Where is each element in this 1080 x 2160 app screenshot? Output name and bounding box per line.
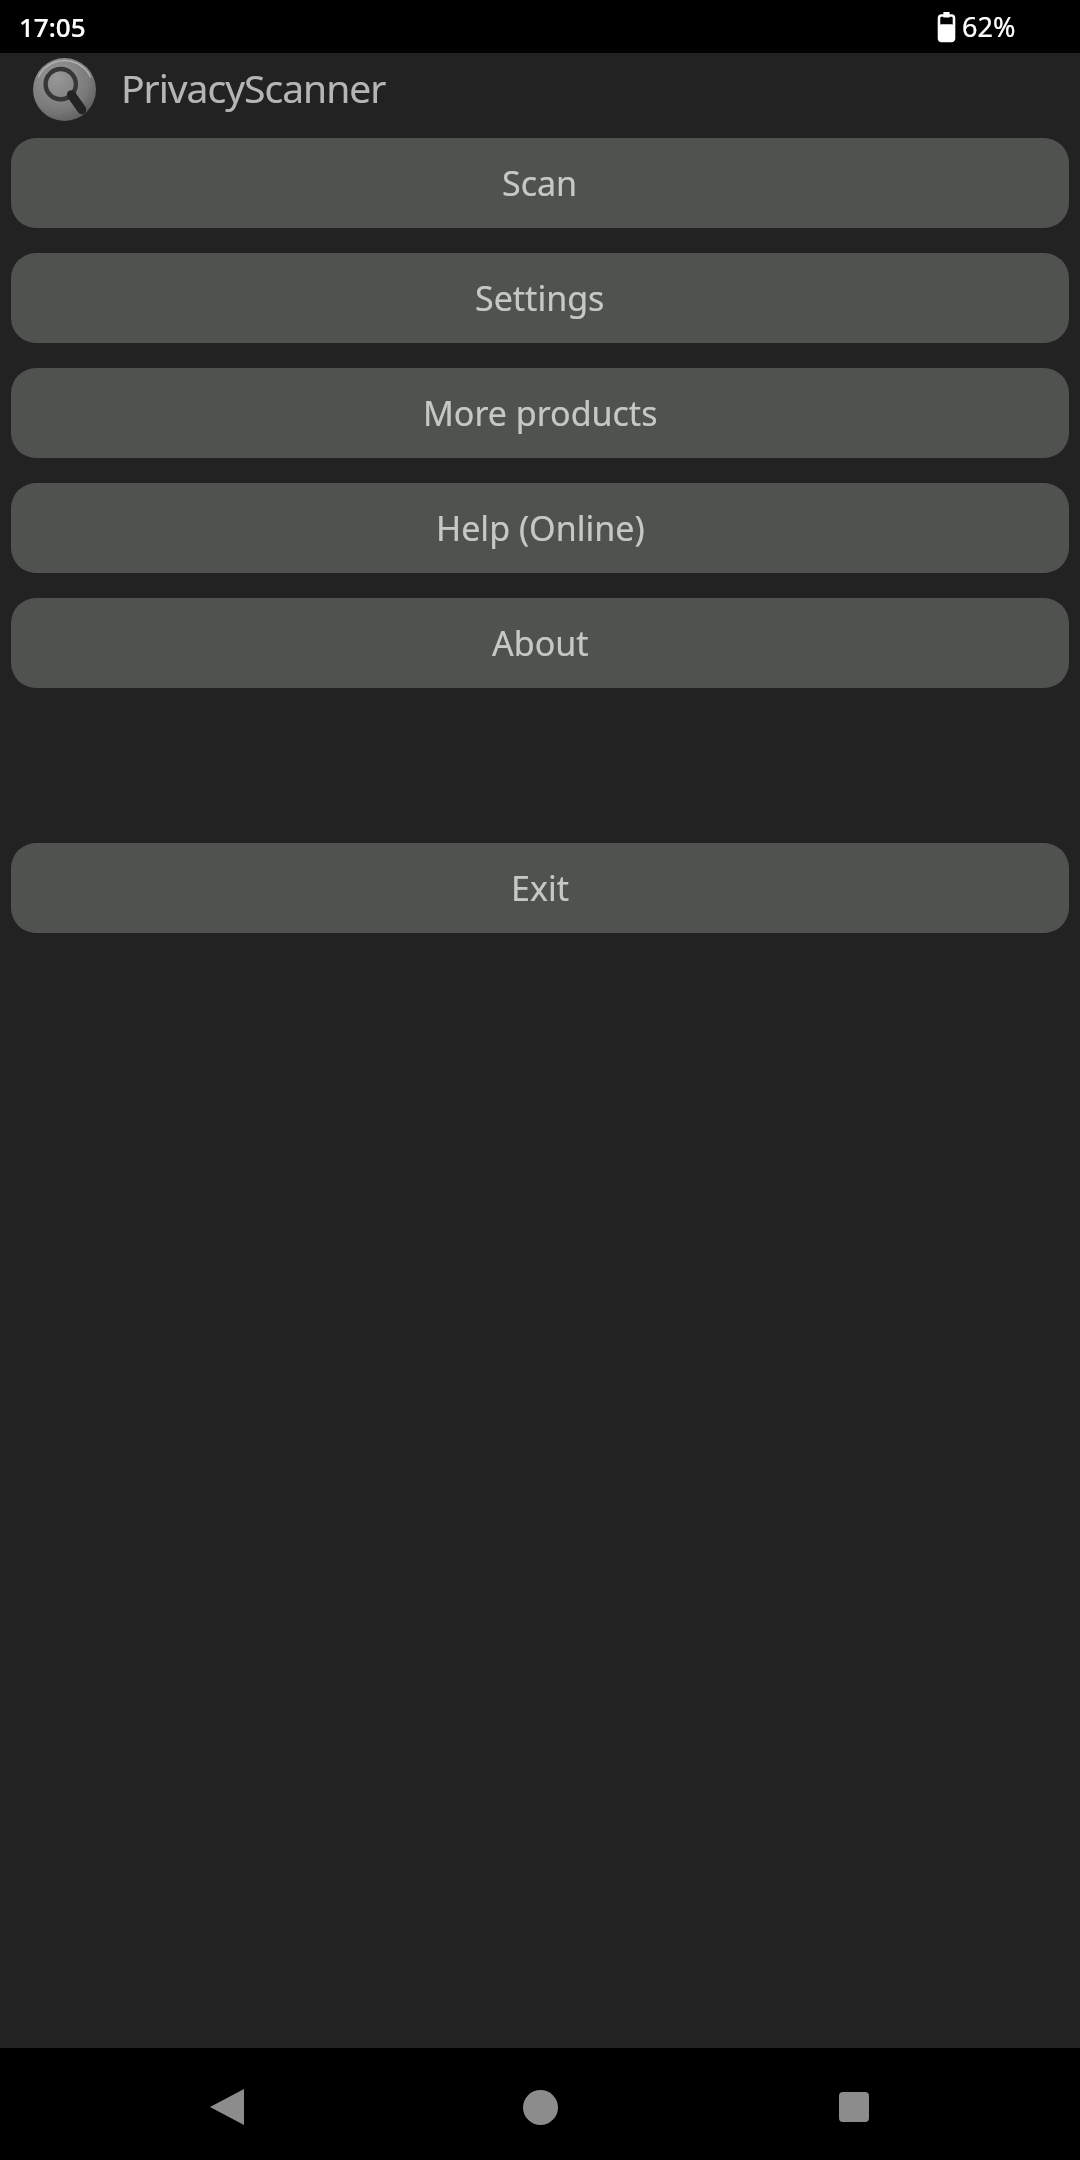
button[interactable] xyxy=(697,2054,1010,2160)
staticText: Settings xyxy=(475,275,605,321)
button[interactable]: Scan xyxy=(11,138,1069,228)
button[interactable]: Help (Online) xyxy=(11,483,1069,573)
button[interactable]: More products xyxy=(11,368,1069,458)
button[interactable] xyxy=(384,2054,697,2160)
button[interactable] xyxy=(70,2054,384,2160)
staticText: Exit xyxy=(511,865,569,911)
staticText: More products xyxy=(423,390,658,436)
staticText: 62% xyxy=(962,8,1016,45)
button[interactable]: About xyxy=(11,598,1069,688)
staticText: 17:05 xyxy=(19,9,86,44)
staticText: About xyxy=(492,620,589,666)
staticText: Help (Online) xyxy=(436,505,645,551)
button[interactable]: Exit xyxy=(11,843,1069,933)
staticText: Scan xyxy=(502,160,578,206)
button[interactable]: Settings xyxy=(11,253,1069,343)
staticText: PrivacyScanner xyxy=(121,61,386,114)
